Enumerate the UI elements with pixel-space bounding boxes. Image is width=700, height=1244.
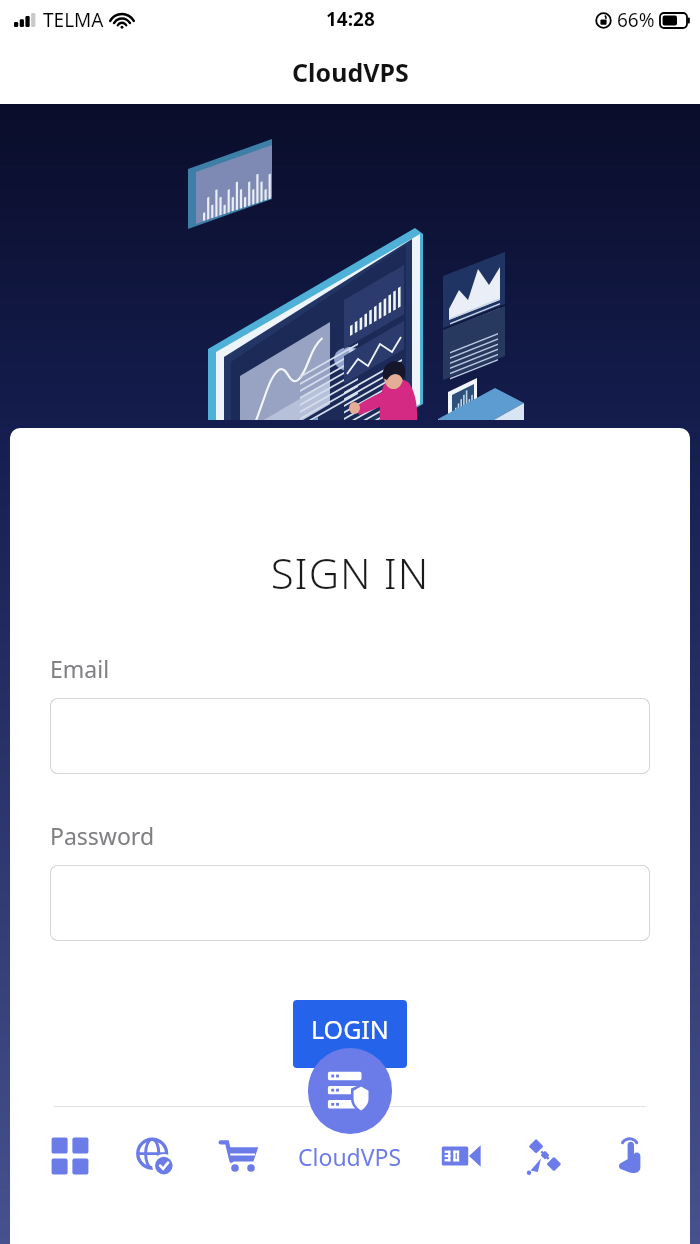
button[interactable]: CloudVPS (298, 1130, 402, 1182)
staticText: TELMA (43, 7, 104, 33)
staticText: LOGIN (311, 1012, 389, 1046)
staticText: 66% (617, 7, 655, 33)
button[interactable]: Domains (129, 1130, 181, 1182)
button[interactable]: Dashboard (44, 1130, 96, 1182)
button[interactable]: Cart (213, 1130, 265, 1182)
button[interactable]: LOGIN (293, 1000, 407, 1068)
button[interactable]: Tap (604, 1130, 656, 1182)
staticText: CloudVPS (298, 1141, 402, 1172)
staticText: Email (50, 653, 110, 684)
button[interactable]: CloudVPS secure server (308, 1048, 392, 1134)
button[interactable] (50, 698, 650, 774)
staticText: Password (50, 820, 155, 851)
staticText: CloudVPS (292, 55, 409, 89)
button[interactable]: Satellite (519, 1130, 571, 1182)
button[interactable]: 3D view (435, 1130, 487, 1182)
staticText: SIGN IN (10, 544, 690, 601)
button[interactable] (50, 865, 650, 941)
staticText: 14:28 (326, 6, 375, 32)
